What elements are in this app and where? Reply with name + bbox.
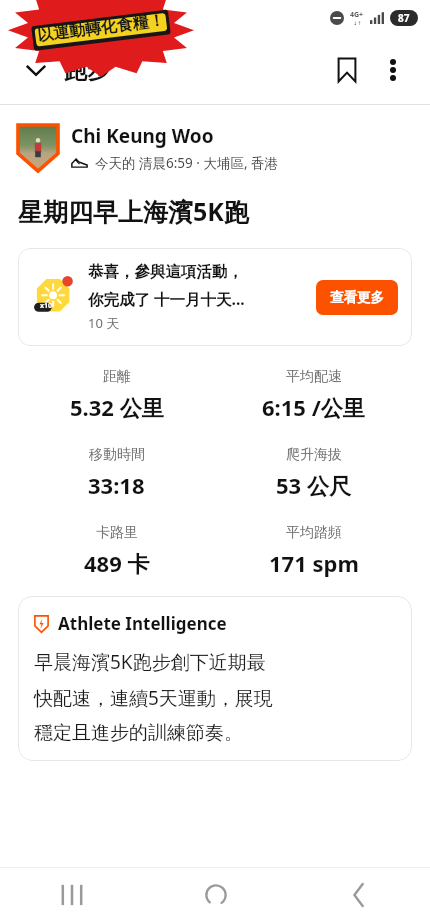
staticText: 早晨海濱5K跑步創下近期最 xyxy=(34,649,266,675)
staticText: 171 spm xyxy=(269,548,359,578)
staticText: 移動時間 xyxy=(89,446,145,464)
button[interactable]: Collapse xyxy=(14,48,58,92)
staticText: x10 xyxy=(40,301,53,311)
button[interactable]: Save xyxy=(324,47,370,93)
staticText: 5.32 公里 xyxy=(70,392,164,422)
staticText: 4G+ xyxy=(350,10,364,20)
staticText: 87 xyxy=(398,11,410,25)
staticText: 卡路里 xyxy=(96,524,138,542)
staticText: 33:18 xyxy=(88,470,145,500)
button[interactable]: Athlete avatar xyxy=(18,125,58,171)
staticText: 查看更多 xyxy=(330,289,384,306)
staticText: 10 天 xyxy=(88,314,120,332)
staticText: 距離 xyxy=(103,368,131,386)
staticText: 恭喜，參與這項活動， xyxy=(88,262,243,282)
button[interactable]: x10 xyxy=(18,248,412,346)
staticText: 平均配速 xyxy=(286,368,342,386)
button[interactable]: Athlete Intelligence xyxy=(18,596,412,761)
button[interactable]: Recents xyxy=(0,868,144,922)
staticText: 53 公尺 xyxy=(276,470,351,500)
staticText: Chi Keung Woo xyxy=(71,123,214,149)
button[interactable]: Home xyxy=(144,868,287,922)
staticText: 平均踏頻 xyxy=(286,524,342,542)
staticText: 489 卡 xyxy=(84,548,150,578)
button[interactable]: 移動時間 xyxy=(18,446,215,500)
staticText: 跑步 xyxy=(64,56,110,85)
button[interactable]: Back xyxy=(287,868,430,922)
button[interactable]: 平均踏頻 xyxy=(215,524,412,578)
staticText: ↓↑ xyxy=(353,20,362,26)
button[interactable]: 卡路里 xyxy=(18,524,215,578)
button[interactable]: 查看更多 xyxy=(316,280,398,315)
staticText: 你完成了 十一月十天... xyxy=(88,288,245,309)
staticText: Athlete Intelligence xyxy=(58,612,227,635)
staticText: 星期四早上海濱5K跑 xyxy=(18,194,249,228)
button[interactable]: 爬升海拔 xyxy=(215,446,412,500)
staticText: 以運動轉化食糧！ xyxy=(36,10,166,46)
staticText: 快配速，連續5天運動，展現 xyxy=(34,685,273,711)
button[interactable]: More options xyxy=(370,47,416,93)
button[interactable]: 距離 xyxy=(18,368,215,422)
staticText: 今天的 清晨6:59 · 大埔區, 香港 xyxy=(95,154,279,172)
button[interactable]: 平均配速 xyxy=(215,368,412,422)
staticText: 6:15 /公里 xyxy=(262,392,365,422)
staticText: 爬升海拔 xyxy=(286,446,342,464)
staticText: 穩定且進步的訓練節奏。 xyxy=(34,721,243,745)
